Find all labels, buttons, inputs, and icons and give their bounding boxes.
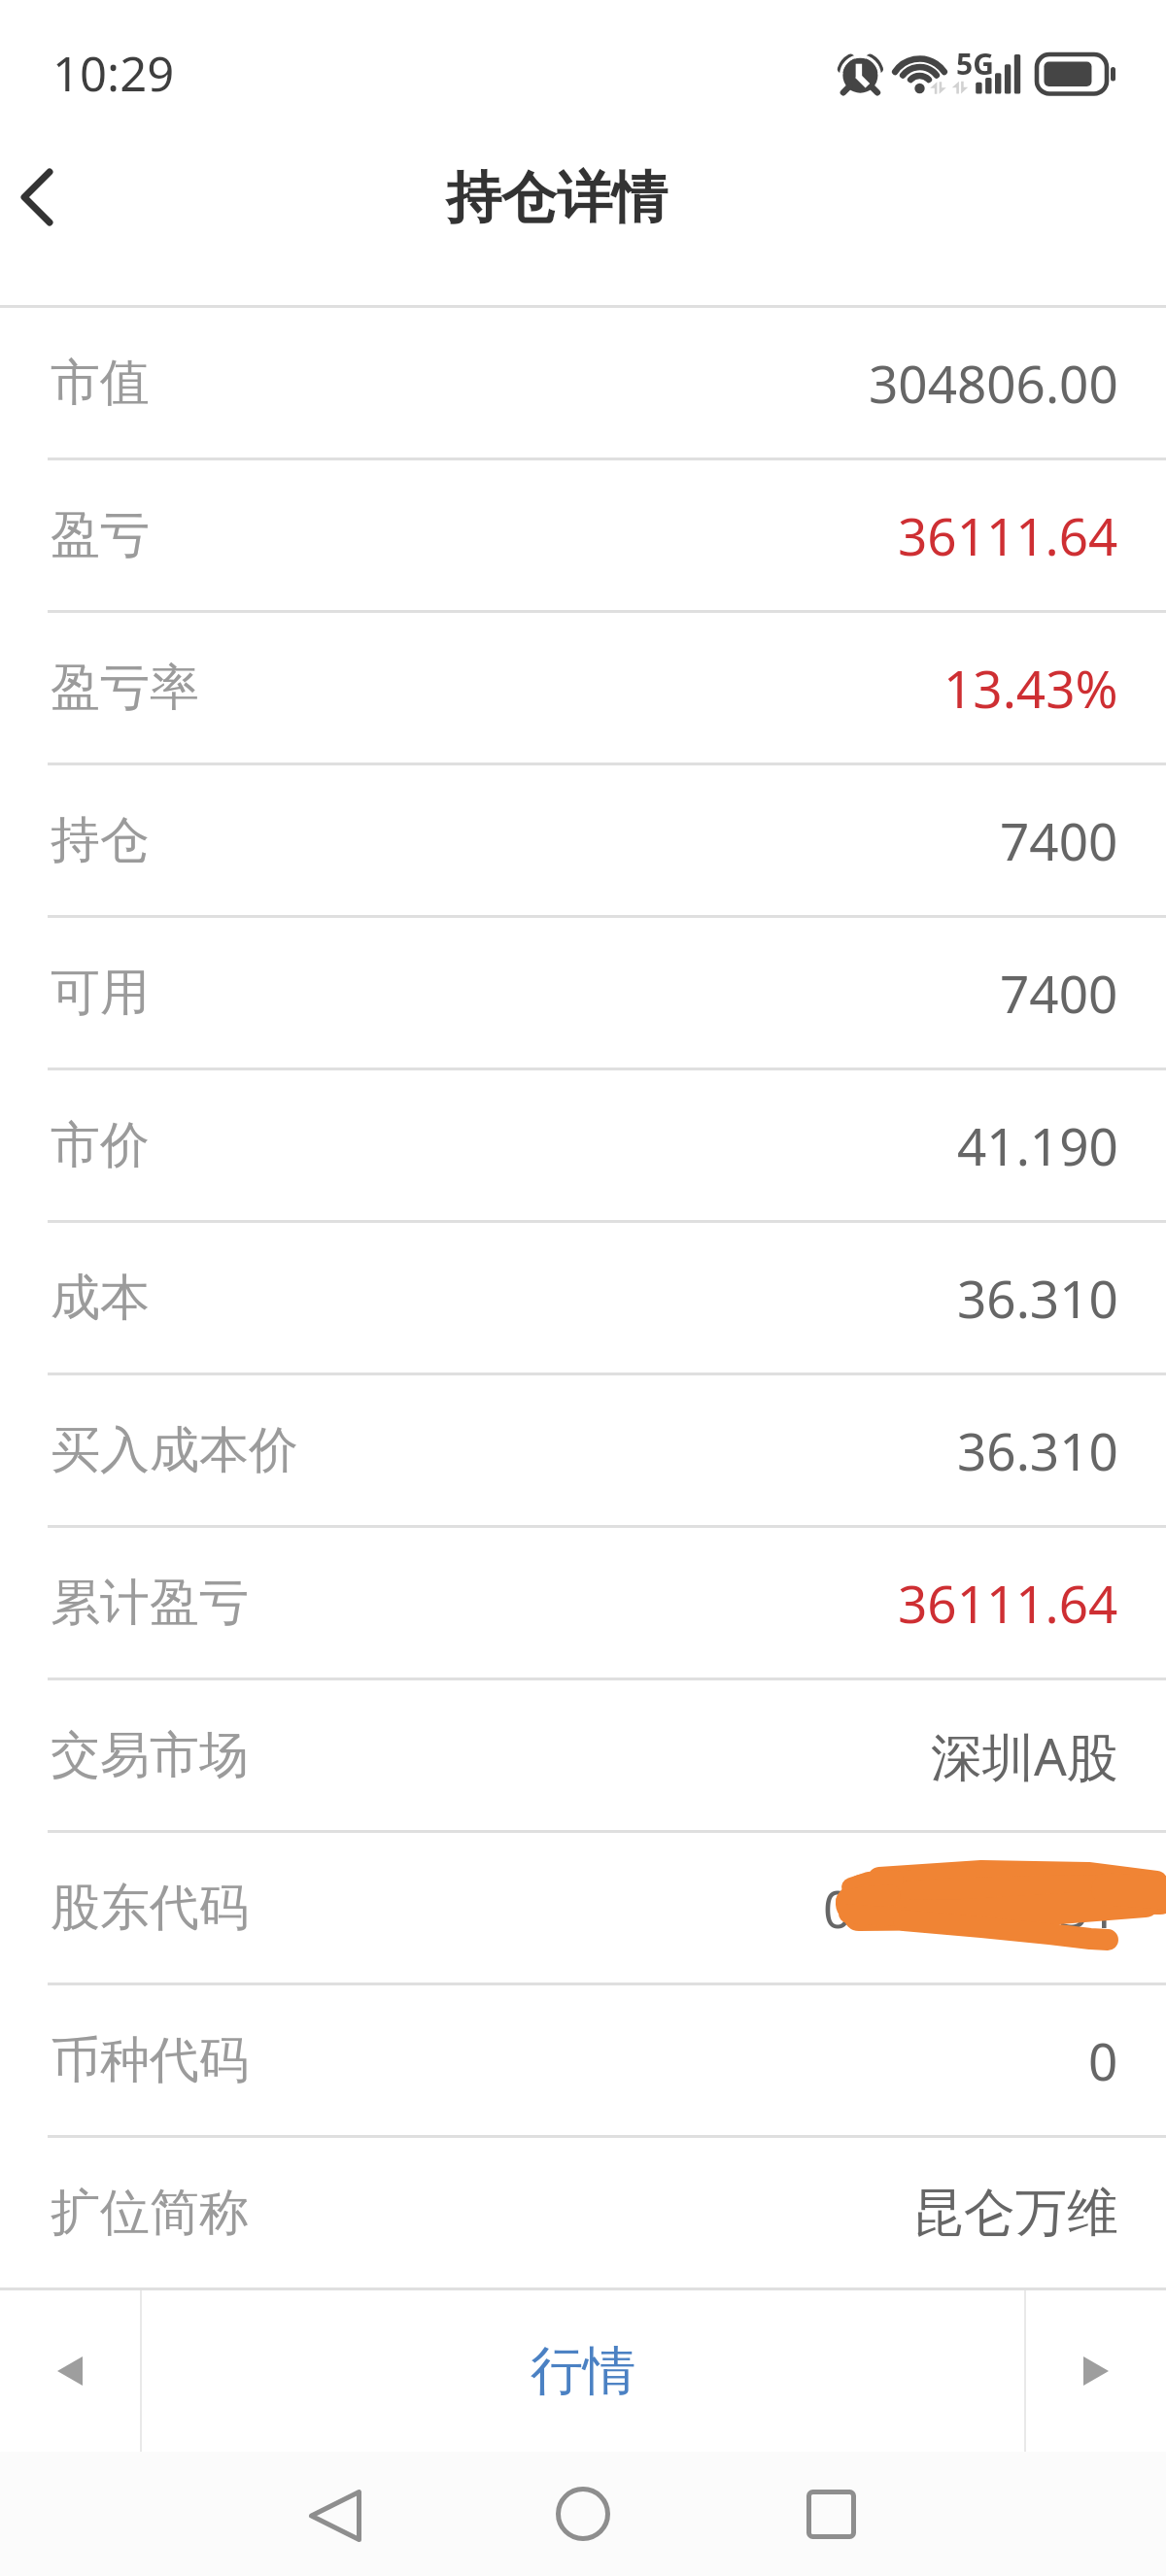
button[interactable]: 成本 [0, 1223, 1166, 1373]
staticText: 7400 [1000, 958, 1118, 1028]
button[interactable]: 股东代码 [0, 1833, 1166, 1983]
staticText: 行情 [531, 2338, 635, 2404]
staticText: 5G [956, 44, 994, 84]
button[interactable]: Previous stock [0, 2290, 140, 2452]
staticText: 盈亏率 [51, 657, 199, 719]
staticText: 7400 [1000, 805, 1118, 875]
staticText: 36.310 [957, 1415, 1118, 1485]
button[interactable]: Recent apps [768, 2452, 894, 2576]
button[interactable]: Back [272, 2454, 398, 2576]
button[interactable]: 交易市场 [0, 1680, 1166, 1830]
button[interactable]: 行情 [142, 2290, 1024, 2452]
staticText: 成本 [51, 1267, 150, 1329]
staticText: 0168899031 [823, 1873, 1118, 1943]
button[interactable]: Home [520, 2452, 646, 2576]
staticText: 0 [1088, 2025, 1118, 2095]
staticText: 币种代码 [51, 2029, 249, 2091]
button[interactable]: 盈亏 [0, 460, 1166, 610]
staticText: 36111.64 [898, 1568, 1118, 1638]
staticText: 买入成本价 [51, 1419, 298, 1481]
button[interactable]: 可用 [0, 918, 1166, 1068]
staticText: 304806.00 [869, 348, 1118, 418]
button[interactable]: 累计盈亏 [0, 1528, 1166, 1678]
button[interactable]: 买入成本价 [0, 1375, 1166, 1525]
staticText: 41.190 [957, 1110, 1118, 1180]
button[interactable]: 币种代码 [0, 1985, 1166, 2135]
staticText: 股东代码 [51, 1877, 249, 1939]
button[interactable]: 盈亏率 [0, 613, 1166, 763]
button[interactable]: Back [0, 145, 117, 261]
button[interactable]: 市值 [0, 308, 1166, 458]
staticText: 36.310 [957, 1263, 1118, 1333]
staticText: 深圳A股 [931, 1720, 1118, 1790]
button[interactable]: Next stock [1026, 2290, 1166, 2452]
staticText: 市值 [51, 352, 150, 414]
button[interactable]: 持仓 [0, 765, 1166, 915]
staticText: 累计盈亏 [51, 1572, 249, 1634]
button[interactable]: 扩位简称 [0, 2138, 1166, 2288]
staticText: 扩位简称 [51, 2182, 249, 2244]
staticText: 交易市场 [51, 1724, 249, 1786]
staticText: 市价 [51, 1114, 150, 1176]
button[interactable]: 市价 [0, 1070, 1166, 1220]
staticText: 可用 [51, 962, 150, 1024]
staticText: 盈亏 [51, 504, 150, 566]
staticText: 10:29 [52, 41, 175, 106]
staticText: 昆仑万维 [912, 2181, 1118, 2246]
staticText: 13.43% [943, 653, 1118, 723]
staticText: 36111.64 [898, 500, 1118, 570]
staticText: 持仓详情 [446, 163, 668, 233]
staticText: 持仓 [51, 809, 150, 871]
